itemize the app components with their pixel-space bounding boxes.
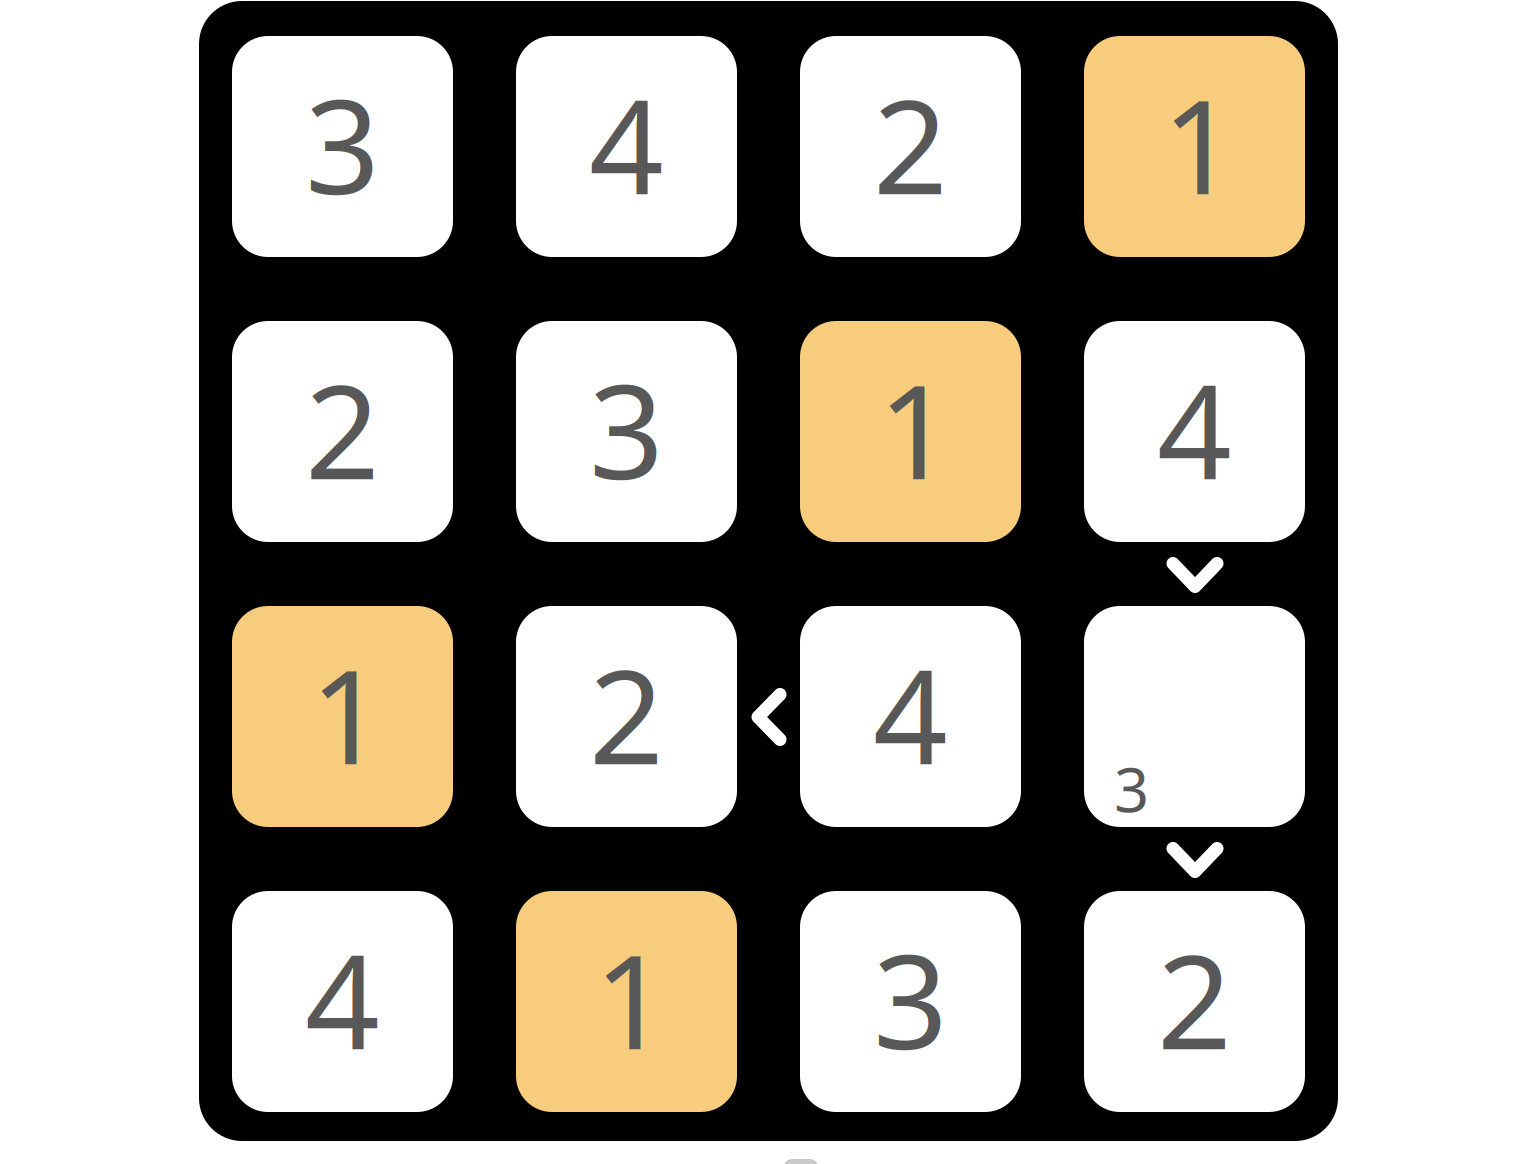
- button[interactable]: Row 2, column 4, 4: [1084, 321, 1305, 542]
- button[interactable]: Row 2, column 2, 3: [516, 321, 737, 542]
- staticText: 4: [589, 57, 664, 230]
- button[interactable]: Row 4, column 1, 4: [232, 891, 453, 1112]
- button[interactable]: Row 2, column 3, 1: [800, 321, 1021, 542]
- button[interactable]: Row 3, column 4, empty, note 3: [1084, 606, 1305, 827]
- staticText: 4: [1157, 342, 1232, 515]
- button[interactable]: Row 3, column 2, 2: [516, 606, 737, 827]
- staticText: 2: [589, 627, 664, 800]
- staticText: 1: [594, 912, 669, 1085]
- staticText: 3: [589, 342, 664, 515]
- button[interactable]: Row 2, column 1, 2: [232, 321, 453, 542]
- staticText: 1: [878, 342, 953, 515]
- staticText: 4: [873, 627, 948, 800]
- staticText: 3: [873, 912, 948, 1085]
- staticText: 1: [310, 627, 385, 800]
- staticText: 4: [305, 912, 380, 1085]
- staticText: 2: [1157, 912, 1232, 1085]
- button[interactable]: Row 1, column 2, 4: [516, 36, 737, 257]
- staticText: 2: [873, 57, 948, 230]
- button[interactable]: Row 4, column 2, 1: [516, 891, 737, 1112]
- staticText: 1: [1162, 57, 1237, 230]
- button[interactable]: Row 3, column 1, 1: [232, 606, 453, 827]
- button[interactable]: Row 1, column 1, 3: [232, 36, 453, 257]
- staticText: 3: [305, 57, 380, 230]
- button[interactable]: Row 3, column 3, 4: [800, 606, 1021, 827]
- button[interactable]: Row 4, column 4, 2: [1084, 891, 1305, 1112]
- staticText: 2: [305, 342, 380, 515]
- button[interactable]: Row 1, column 3, 2: [800, 36, 1021, 257]
- button[interactable]: Row 4, column 3, 3: [800, 891, 1021, 1112]
- button[interactable]: Row 1, column 4, 1: [1084, 36, 1305, 257]
- staticText: 3: [1114, 748, 1149, 829]
